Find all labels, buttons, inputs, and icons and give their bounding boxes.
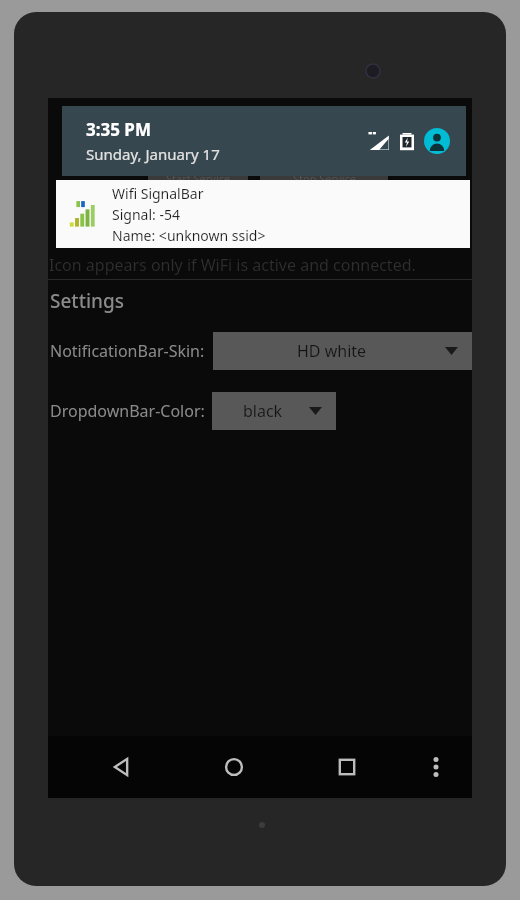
button[interactable]: User account (424, 128, 450, 154)
button[interactable]: More options (412, 743, 460, 791)
button[interactable]: Home (210, 743, 258, 791)
staticText: 3:35 PM (86, 118, 151, 141)
staticText: NotificationBar-Skin: (50, 340, 205, 362)
button[interactable]: Stop Service (260, 170, 388, 186)
staticText: Wifi SignalBar (112, 184, 204, 203)
staticText: Sunday, January 17 (86, 144, 220, 164)
staticText: Stop Service (293, 171, 356, 186)
staticText: DropdownBar-Color: (50, 400, 205, 422)
staticText: black (243, 400, 283, 422)
staticText: Name: <unknown ssid> (112, 226, 266, 245)
button[interactable]: HD white (213, 332, 472, 370)
button[interactable]: Back (97, 743, 145, 791)
staticText: Signal: -54 (112, 205, 180, 224)
button[interactable]: Start Service (148, 170, 248, 186)
button[interactable]: black (212, 392, 336, 430)
staticText: HD white (297, 340, 367, 362)
other: Battery (400, 131, 414, 151)
staticText: Start Service (166, 171, 231, 186)
button[interactable]: Recents (323, 743, 371, 791)
staticText: Settings (50, 288, 124, 314)
button[interactable]: 3:35 PM (62, 106, 466, 176)
other: Mobile signal 3G (368, 131, 390, 151)
button[interactable]: Wifi SignalBar (56, 180, 470, 248)
staticText: Icon appears only if WiFi is active and … (49, 254, 416, 276)
